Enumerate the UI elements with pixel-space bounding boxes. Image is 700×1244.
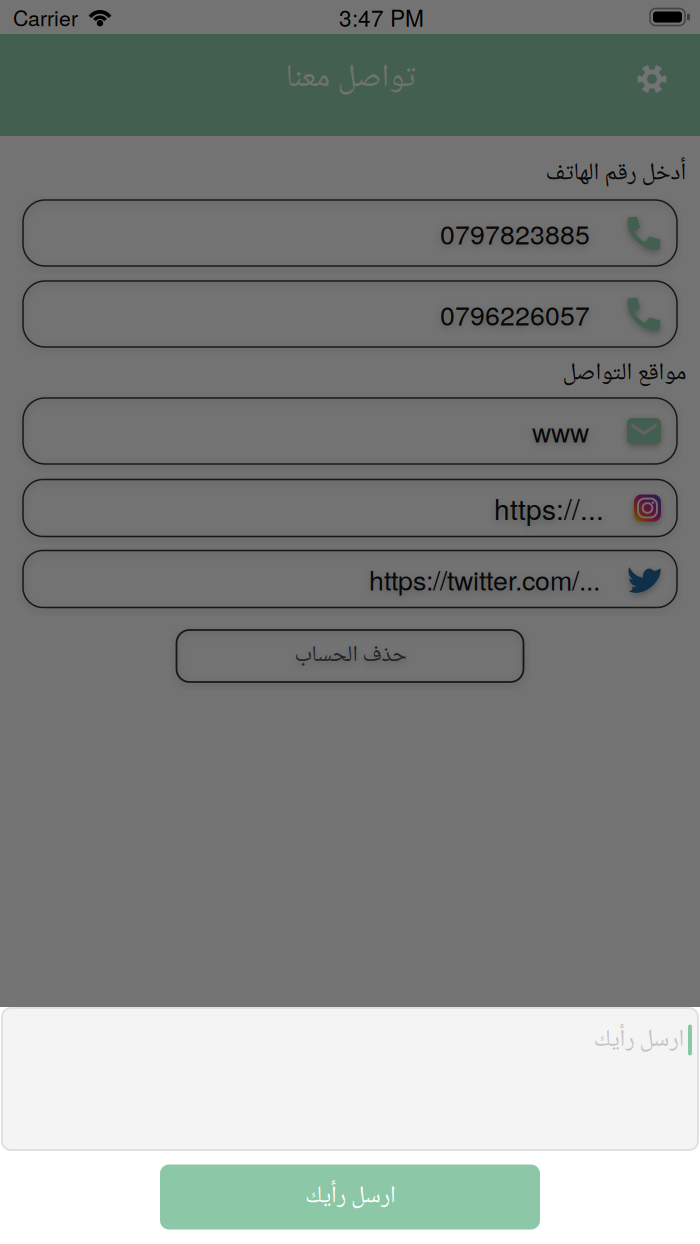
staticText: 3:47 PM (339, 1, 424, 33)
button[interactable]: Settings (625, 52, 679, 106)
staticText: أدخل رقم الهاتف (545, 154, 686, 194)
button[interactable]: ارسل رأيك (160, 1164, 540, 1229)
staticText: 0796226057 (440, 295, 590, 333)
staticText: www (532, 412, 589, 450)
button[interactable]: 0797823885 (23, 200, 677, 266)
staticText: ارسل رأيك (304, 1177, 395, 1217)
button[interactable]: ارسل رأيك (2, 1008, 698, 1150)
staticText: 0797823885 (440, 214, 590, 252)
staticText: تواصل معنا (285, 52, 415, 106)
staticText: https://twitter.com/... (369, 560, 600, 598)
staticText: حذف الحساب (294, 637, 406, 675)
button[interactable]: 0796226057 (23, 281, 677, 347)
button[interactable]: https://twitter.com/... (23, 550, 677, 607)
staticText: ارسل رأيك (593, 1020, 684, 1061)
button[interactable]: حذف الحساب (176, 630, 523, 682)
button[interactable]: https://... (23, 479, 677, 536)
staticText: مواقع التواصل (562, 354, 686, 394)
staticText: https://... (494, 488, 604, 528)
button[interactable]: www (23, 398, 677, 464)
staticText: Carrier (13, 2, 78, 32)
